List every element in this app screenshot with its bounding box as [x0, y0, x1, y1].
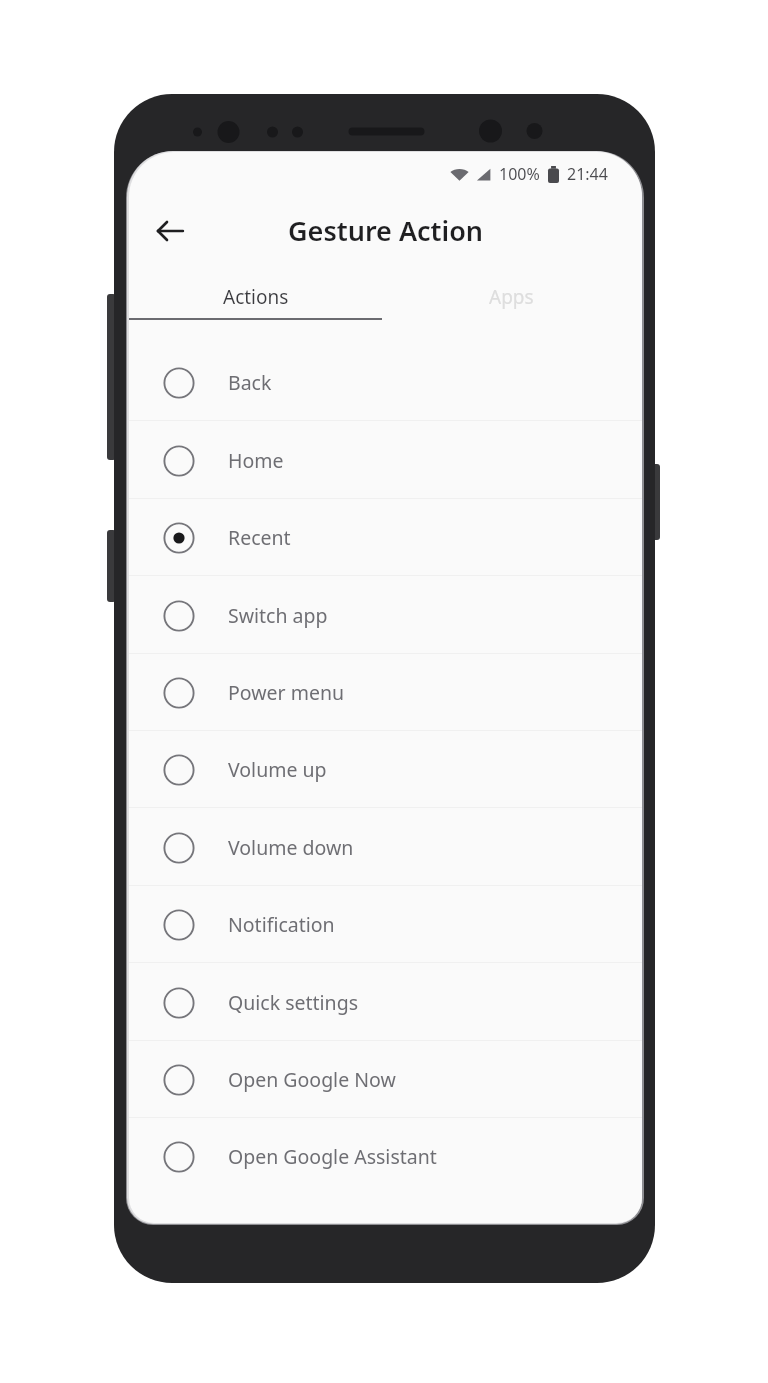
- button[interactable]: Volume down: [129, 809, 642, 886]
- staticText: Home: [228, 447, 284, 474]
- button[interactable]: Notification: [129, 886, 642, 963]
- staticText: 21:44: [567, 163, 608, 185]
- staticText: Apps: [489, 284, 534, 310]
- staticText: Open Google Now: [228, 1066, 396, 1093]
- button[interactable]: Open Google Now: [129, 1041, 642, 1118]
- button[interactable]: Quick settings: [129, 964, 642, 1041]
- button[interactable]: Power menu: [129, 654, 642, 731]
- button[interactable]: Back: [146, 207, 194, 255]
- button[interactable]: Open Google Assistant: [129, 1118, 642, 1195]
- staticText: Switch app: [228, 602, 328, 629]
- staticText: Recent: [228, 524, 291, 551]
- button[interactable]: Home: [129, 422, 642, 499]
- button[interactable]: Back: [129, 344, 642, 421]
- staticText: Volume down: [228, 834, 354, 861]
- button[interactable]: Switch app: [129, 577, 642, 654]
- button[interactable]: Recent: [129, 499, 642, 576]
- staticText: Open Google Assistant: [228, 1143, 437, 1170]
- button[interactable]: Actions: [129, 268, 382, 320]
- staticText: Notification: [228, 911, 335, 938]
- staticText: 100%: [499, 163, 540, 185]
- staticText: Volume up: [228, 756, 327, 783]
- staticText: Back: [228, 369, 272, 396]
- button[interactable]: Volume up: [129, 731, 642, 808]
- staticText: Gesture Action: [288, 212, 484, 249]
- staticText: Actions: [223, 284, 289, 310]
- button[interactable]: Apps: [382, 268, 640, 320]
- staticText: Quick settings: [228, 989, 358, 1016]
- staticText: Power menu: [228, 679, 344, 706]
